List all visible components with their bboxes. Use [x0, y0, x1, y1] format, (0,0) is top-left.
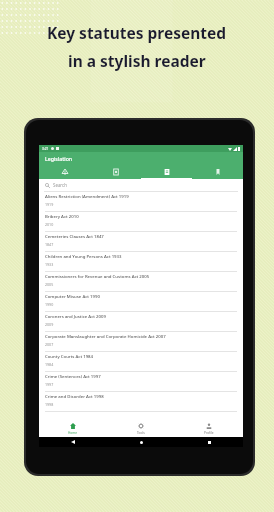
button[interactable]: Home [39, 421, 107, 437]
staticText: Tools [137, 431, 145, 435]
staticText: Commissioners for Revenue and Customs Ac… [45, 273, 150, 279]
staticText: Bribery Act 2010 [45, 213, 79, 219]
button[interactable]: Crime and Disorder Act 1998 [39, 392, 243, 412]
staticText: 1847 [45, 242, 54, 247]
button[interactable]: Cemeteries Clauses Act 1847 [39, 232, 243, 252]
staticText: 1998 [45, 402, 54, 407]
staticText: 1933 [45, 262, 54, 267]
staticText: Crime and Disorder Act 1998 [45, 393, 104, 399]
staticText: Cemeteries Clauses Act 1847 [45, 233, 104, 239]
button[interactable]: Corporate Manslaughter and Corporate Hom… [39, 332, 243, 352]
staticText: Crime (Sentences) Act 1997 [45, 373, 101, 379]
button[interactable]: Home tab [39, 165, 90, 179]
button[interactable]: Profile [175, 421, 243, 437]
staticText: 1919 [45, 202, 54, 207]
button[interactable]: Children and Young Persons Act 1933 [39, 252, 243, 272]
staticText: Key statutes presented [47, 22, 227, 43]
staticText: County Courts Act 1984 [45, 353, 94, 359]
staticText: 1997 [45, 382, 54, 387]
staticText: 3:21 [42, 147, 49, 151]
button[interactable]: Aliens Restriction (Amendment) Act 1919 [39, 192, 243, 212]
staticText: Corporate Manslaughter and Corporate Hom… [45, 333, 166, 339]
staticText: Profile [204, 431, 214, 435]
staticText: Home [68, 431, 78, 435]
staticText: Legislation [45, 155, 73, 162]
button[interactable]: Crime (Sentences) Act 1997 [39, 372, 243, 392]
staticText: Search [53, 182, 67, 188]
staticText: 1990 [45, 302, 54, 307]
staticText: 1984 [45, 362, 54, 367]
button[interactable]: Tools [107, 421, 175, 437]
staticText: 2007 [45, 342, 54, 347]
button[interactable]: Reader tab [141, 165, 192, 179]
staticText: Aliens Restriction (Amendment) Act 1919 [45, 193, 129, 199]
button[interactable]: Commissioners for Revenue and Customs Ac… [39, 272, 243, 292]
button[interactable]: Acts tab [90, 165, 141, 179]
button[interactable]: Bribery Act 2010 [39, 212, 243, 232]
staticText: in a stylish reader [68, 50, 206, 71]
staticText: Computer Misuse Act 1990 [45, 293, 100, 299]
staticText: 2009 [45, 322, 54, 327]
button[interactable]: Bookmarks tab [192, 165, 243, 179]
button[interactable]: Coroners and Justice Act 2009 [39, 312, 243, 332]
staticText: Children and Young Persons Act 1933 [45, 253, 122, 259]
staticText: 2005 [45, 282, 54, 287]
staticText: Coroners and Justice Act 2009 [45, 313, 106, 319]
button[interactable]: Computer Misuse Act 1990 [39, 292, 243, 312]
staticText: 2010 [45, 222, 54, 227]
button[interactable]: County Courts Act 1984 [39, 352, 243, 372]
